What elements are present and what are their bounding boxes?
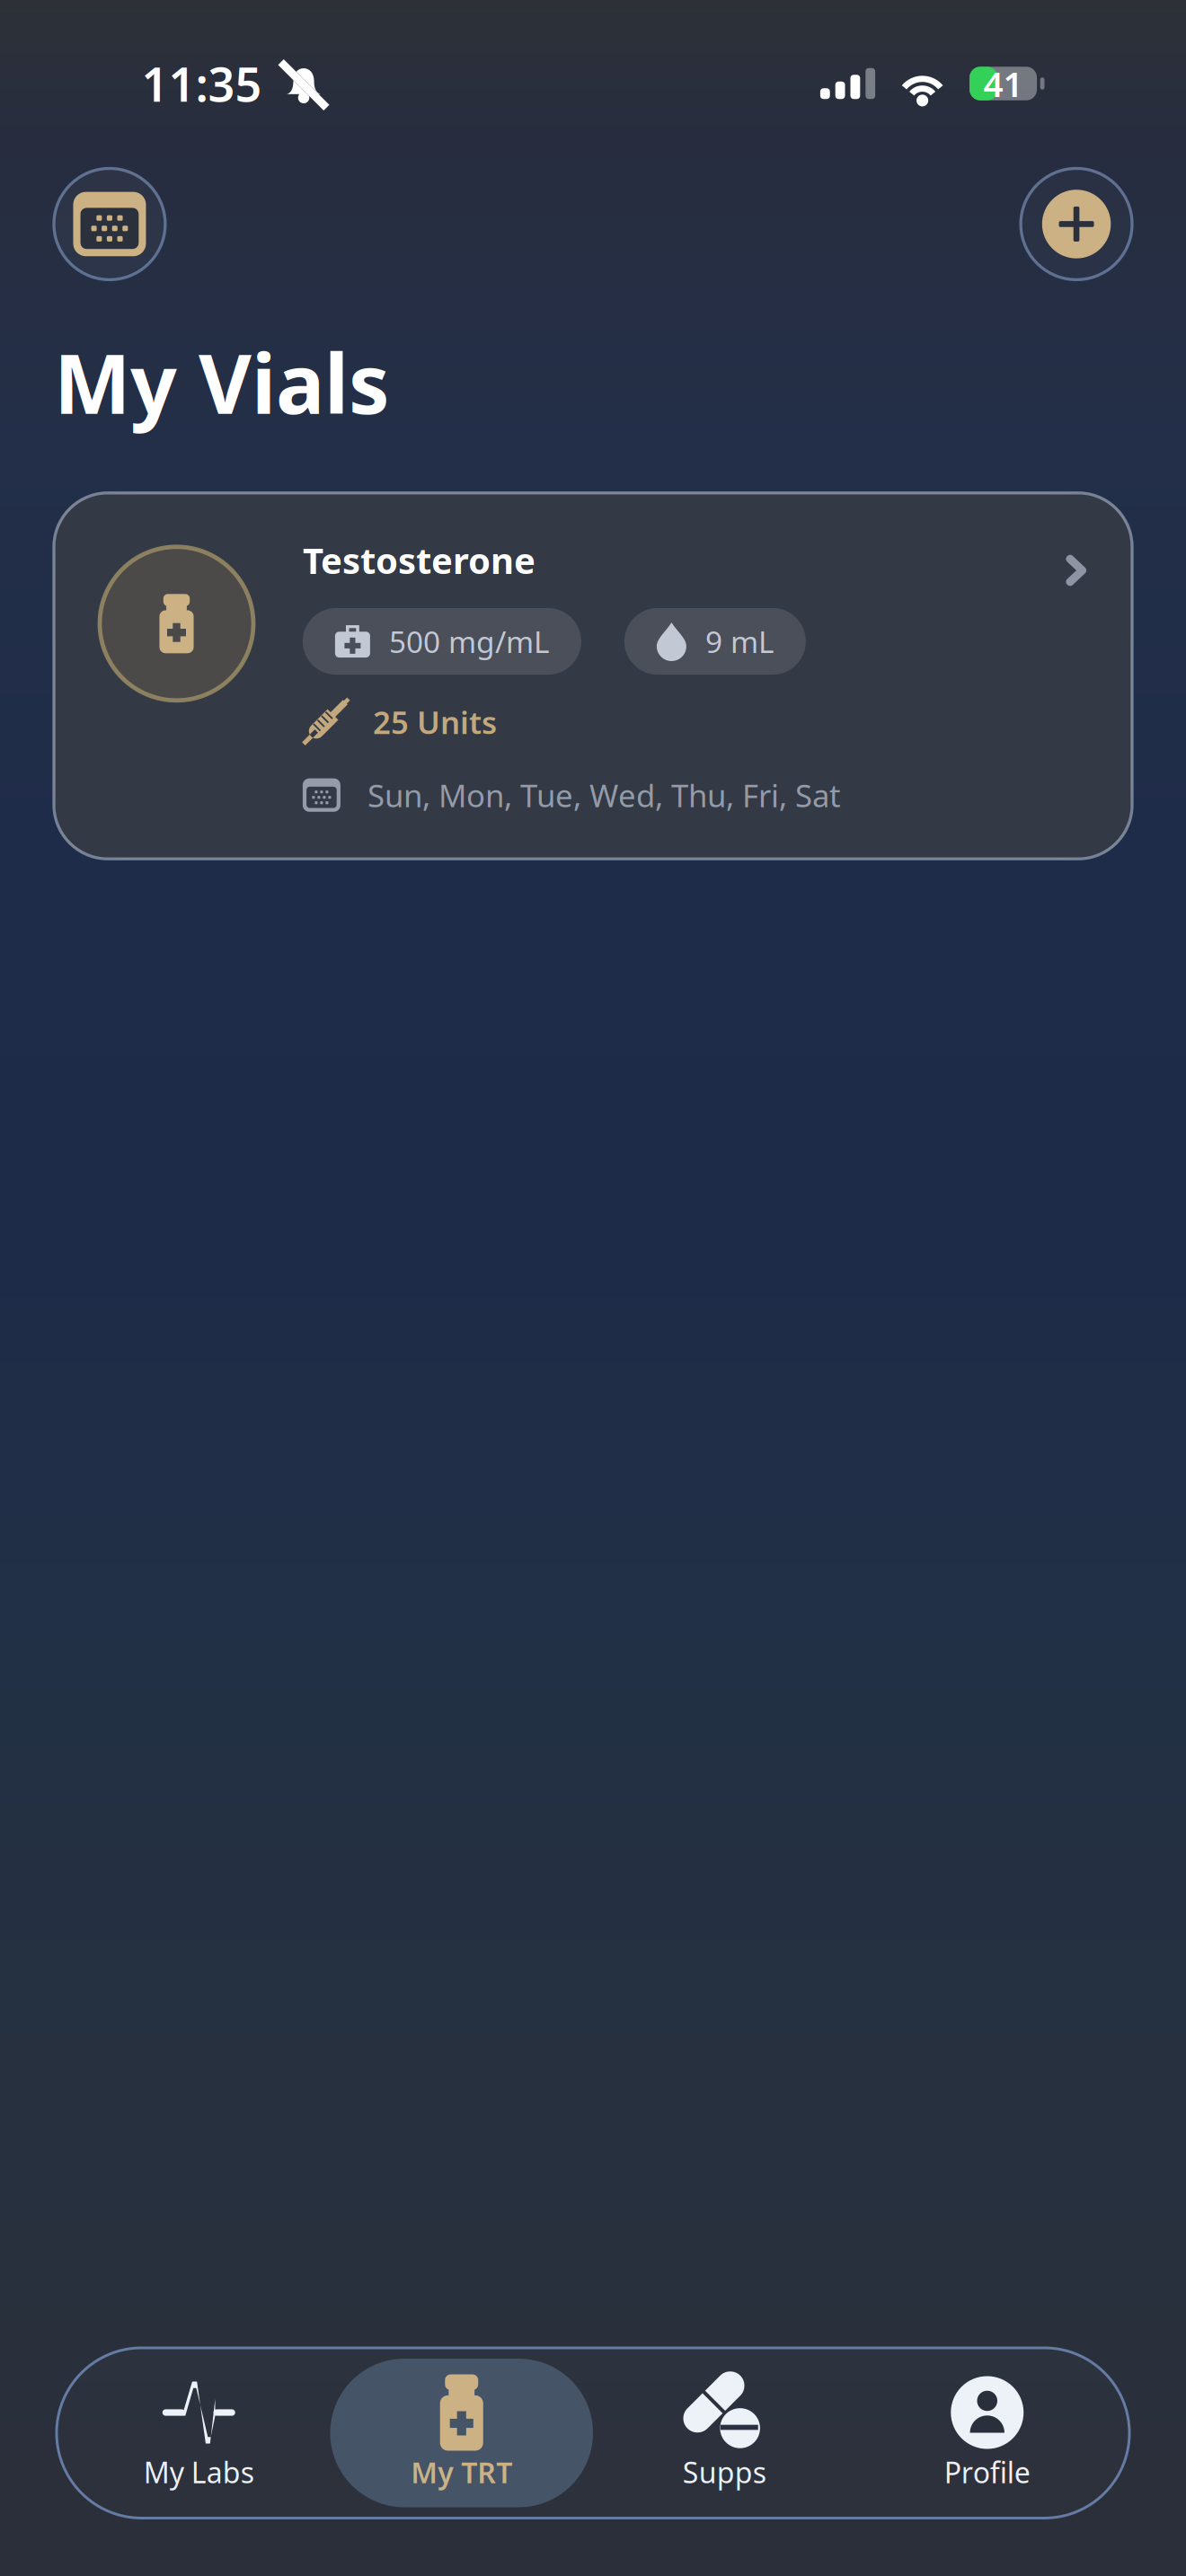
- staticText: 25 Units: [373, 701, 497, 743]
- staticText: Profile: [944, 2453, 1030, 2491]
- staticText: Sun, Mon, Tue, Wed, Thu, Fri, Sat: [367, 774, 841, 816]
- button[interactable]: Testosterone: [54, 493, 1132, 859]
- staticText: 500 mg/mL: [389, 621, 549, 661]
- staticText: Supps: [683, 2453, 766, 2491]
- button[interactable]: My Labs: [67, 2359, 330, 2507]
- staticText: 9 mL: [705, 621, 774, 661]
- staticText: 11:35: [142, 53, 262, 115]
- staticText: My Labs: [144, 2453, 254, 2491]
- staticText: My Vials: [54, 328, 390, 436]
- staticText: My TRT: [411, 2453, 512, 2491]
- staticText: 41: [983, 60, 1023, 107]
- button[interactable]: Supps: [593, 2359, 856, 2507]
- button[interactable]: My TRT: [330, 2359, 593, 2507]
- button[interactable]: Calendar: [54, 168, 165, 280]
- button[interactable]: Add vial: [1021, 168, 1132, 280]
- button[interactable]: Profile: [856, 2359, 1119, 2507]
- staticText: Testosterone: [303, 536, 535, 584]
